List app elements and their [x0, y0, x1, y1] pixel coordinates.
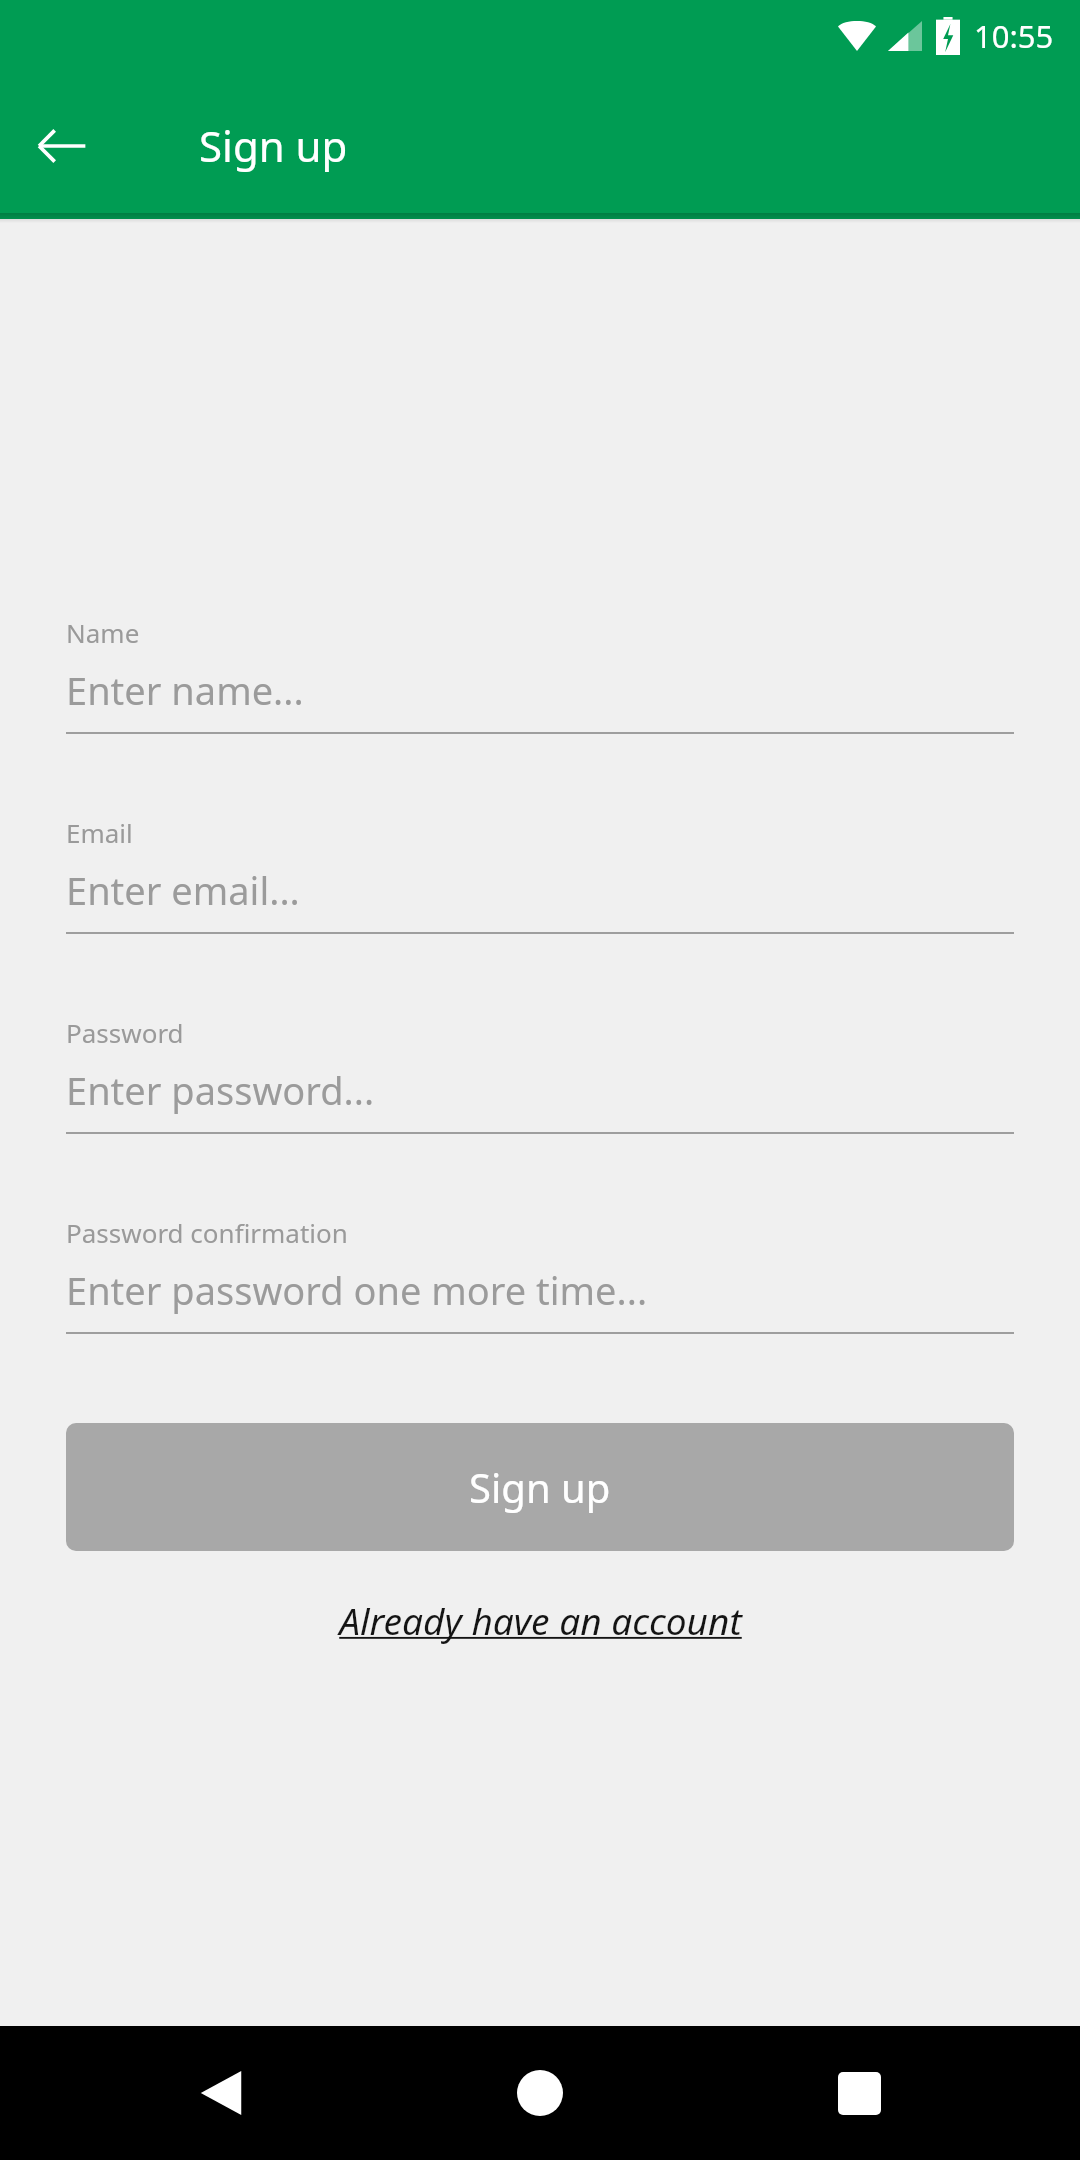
- staticText: Password confirmation: [66, 1215, 348, 1250]
- staticText: Email: [66, 815, 133, 850]
- button[interactable]: Name: [66, 615, 1014, 734]
- button[interactable]: Password confirmation: [66, 1215, 1014, 1334]
- staticText: Enter password one more time...: [66, 1264, 648, 1316]
- button[interactable]: Recent apps: [788, 2026, 930, 2160]
- button[interactable]: Already have an account: [339, 1595, 742, 1645]
- staticText: Sign up: [469, 1460, 611, 1514]
- staticText: 10:55: [974, 15, 1054, 57]
- staticText: Password: [66, 1015, 184, 1050]
- button[interactable]: Sign up: [66, 1423, 1014, 1551]
- button[interactable]: Back: [150, 2026, 292, 2160]
- button[interactable]: Back: [22, 105, 104, 187]
- staticText: Enter password...: [66, 1064, 375, 1116]
- staticText: Enter name...: [66, 664, 304, 716]
- staticText: Already have an account: [339, 1595, 742, 1645]
- staticText: Sign up: [199, 117, 348, 174]
- staticText: Name: [66, 615, 140, 650]
- button[interactable]: Email: [66, 815, 1014, 934]
- staticText: Enter email...: [66, 864, 300, 916]
- button[interactable]: Home: [469, 2026, 611, 2160]
- button[interactable]: Password: [66, 1015, 1014, 1134]
